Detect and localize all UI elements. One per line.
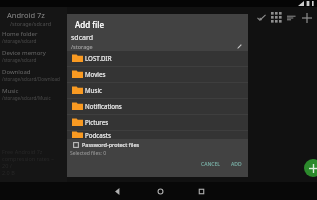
staticText: Free Android 7z <box>2 148 43 155</box>
button[interactable]: ADD <box>227 159 246 170</box>
staticText: Notifications <box>85 102 122 110</box>
staticText: compression rates ~ <box>2 155 55 162</box>
staticText: /storage <box>71 43 93 50</box>
staticText: /storage/sdcard/Download <box>2 76 60 82</box>
button[interactable]: Edit path <box>235 42 243 50</box>
button[interactable]: Password-protect files <box>67 139 248 150</box>
staticText: Pictures <box>85 118 109 126</box>
button[interactable]: Recents <box>193 183 209 199</box>
button[interactable]: Music <box>67 83 248 98</box>
button[interactable]: Grid view <box>269 10 284 25</box>
button[interactable]: Notifications <box>67 99 248 114</box>
staticText: Home folder <box>2 30 38 38</box>
button[interactable]: Home folder <box>0 29 67 48</box>
staticText: Music <box>85 86 102 94</box>
staticText: Device memory <box>2 49 46 57</box>
staticText: LOST.DIR <box>85 54 112 62</box>
button[interactable]: Podcasts <box>67 131 248 139</box>
button[interactable]: Back <box>109 183 125 199</box>
staticText: Download <box>2 68 31 76</box>
staticText: Android 7z <box>7 10 45 20</box>
button[interactable]: Device memory <box>0 48 67 67</box>
staticText: /storage/sdcard/Music <box>2 95 51 101</box>
staticText: /storage/sdcard <box>2 57 37 63</box>
staticText: 2.0 B <box>2 169 15 176</box>
button[interactable]: Download <box>0 67 67 86</box>
button[interactable]: Music <box>0 86 67 105</box>
staticText: sdcard <box>71 33 94 43</box>
staticText: Selected files: 0 <box>70 150 107 157</box>
staticText: /storage/sdcard <box>2 38 37 44</box>
staticText: /storage/sdcard <box>10 20 52 27</box>
button[interactable]: Select all <box>254 10 269 25</box>
staticText: Music <box>2 87 19 95</box>
button[interactable]: CANCEL <box>197 159 224 170</box>
button[interactable]: Movies <box>67 67 248 82</box>
button[interactable]: Add <box>304 159 317 177</box>
staticText: CANCEL <box>201 161 220 168</box>
staticText: Add file <box>75 19 104 30</box>
button[interactable]: Add file <box>299 10 314 25</box>
staticText: Podcasts <box>85 131 111 138</box>
staticText: Password-protect files <box>82 141 140 148</box>
button[interactable]: Pictures <box>67 115 248 130</box>
button[interactable]: Home <box>152 183 168 199</box>
staticText: Movies <box>85 70 106 78</box>
button[interactable]: LOST.DIR <box>67 51 248 66</box>
staticText: 20 / <box>2 162 12 169</box>
button[interactable]: Sort <box>284 10 299 25</box>
staticText: ADD <box>231 161 242 168</box>
